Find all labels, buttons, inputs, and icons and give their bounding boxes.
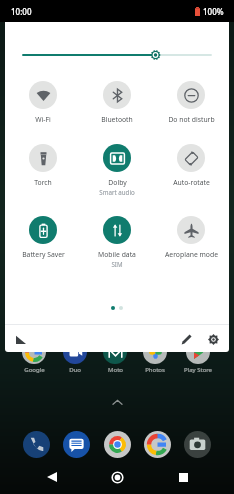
button[interactable]: Duo [63, 340, 87, 364]
staticText: Photos [145, 366, 165, 374]
button[interactable]: Battery Saver [7, 216, 79, 259]
staticText: Mobile data [98, 250, 136, 259]
button[interactable]: Mobile data [81, 216, 153, 268]
staticText: SIM [111, 260, 123, 268]
button[interactable]: Signal [12, 330, 30, 348]
button[interactable]: App [104, 431, 131, 458]
button[interactable]: Bluetooth [81, 81, 153, 124]
button[interactable]: App [184, 431, 211, 458]
staticText: 100% [203, 6, 224, 17]
staticText: Aeroplane mode [165, 250, 218, 259]
button[interactable]: Back [38, 463, 66, 491]
staticText: Play Store [184, 366, 212, 374]
button[interactable]: Dolby [81, 144, 153, 196]
button[interactable]: Brightness [23, 46, 211, 64]
staticText: Auto-rotate [173, 178, 210, 187]
button[interactable]: App [23, 431, 50, 458]
button[interactable]: Torch [7, 144, 79, 187]
button[interactable]: Home [103, 463, 131, 491]
button[interactable]: App [63, 431, 90, 458]
staticText: Smart audio [99, 188, 135, 196]
staticText: 10:00 [11, 6, 32, 17]
staticText: Do not disturb [168, 115, 215, 124]
button[interactable]: Settings [203, 329, 223, 349]
button[interactable]: Google [22, 340, 46, 364]
button[interactable]: Moto [103, 340, 127, 364]
staticText: Bluetooth [101, 115, 133, 124]
staticText: Battery Saver [22, 250, 65, 259]
button[interactable]: Photos [143, 340, 167, 364]
staticText: Google [24, 366, 45, 374]
staticText: Duo [69, 366, 81, 374]
button[interactable]: Wi-Fi [7, 81, 79, 124]
staticText: Dolby [108, 178, 127, 187]
button[interactable]: App [144, 431, 171, 458]
button[interactable]: Aeroplane mode [155, 216, 227, 259]
button[interactable]: Play Store [186, 340, 210, 364]
staticText: Wi-Fi [35, 115, 51, 124]
button[interactable]: Do not disturb [155, 81, 227, 124]
staticText: Moto [108, 366, 123, 374]
staticText: Torch [34, 178, 52, 187]
button[interactable]: Auto-rotate [155, 144, 227, 187]
button[interactable]: Edit [176, 329, 196, 349]
button[interactable]: Recents [169, 463, 197, 491]
